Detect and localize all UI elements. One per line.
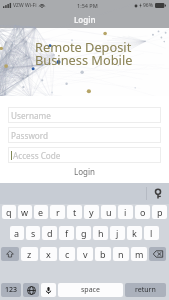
button[interactable]: j [110, 226, 125, 240]
button[interactable]: Login [0, 164, 169, 179]
staticText: Business Mobile [35, 51, 133, 68]
staticText: Username [11, 110, 51, 121]
staticText: m [135, 248, 144, 260]
staticText: n [118, 248, 124, 260]
button[interactable]: l [144, 226, 159, 240]
staticText: e [38, 206, 44, 218]
staticText: h [98, 227, 104, 239]
button[interactable]: return [125, 283, 166, 297]
staticText: p [157, 206, 163, 218]
button[interactable]: p [152, 205, 167, 219]
button[interactable]: b [95, 247, 111, 261]
button[interactable]: v [77, 247, 93, 261]
button[interactable]: g [76, 226, 91, 240]
staticText: g [81, 227, 87, 239]
staticText: x [46, 248, 51, 260]
button[interactable]: f [59, 226, 74, 240]
staticText: 96% [143, 2, 153, 9]
button[interactable]: Password [8, 127, 161, 143]
staticText: c [65, 248, 70, 260]
button[interactable]: m [131, 247, 147, 261]
staticText: space [81, 285, 100, 295]
button[interactable]: y [84, 205, 99, 219]
staticText: Access Code [13, 150, 61, 161]
button[interactable]: Passwords [152, 188, 163, 199]
button[interactable]: space [58, 283, 123, 297]
staticText: j [116, 227, 119, 239]
staticText: return [135, 285, 156, 295]
button[interactable]: Backspace [149, 247, 166, 261]
button[interactable]: q [2, 205, 16, 219]
button[interactable]: n [113, 247, 129, 261]
button[interactable]: 123 [1, 283, 21, 297]
button[interactable]: i [118, 205, 133, 219]
staticText: w [21, 206, 29, 218]
button[interactable]: c [59, 247, 75, 261]
button[interactable]: o [135, 205, 150, 219]
staticText: z [27, 248, 32, 260]
staticText: l [150, 227, 153, 239]
button[interactable]: u [101, 205, 116, 219]
button[interactable]: Username [8, 107, 161, 123]
button[interactable]: Shift [1, 247, 19, 261]
staticText: q [6, 206, 12, 218]
staticText: y [89, 206, 94, 218]
button[interactable]: Next keyboard [23, 283, 39, 297]
button[interactable]: s [26, 226, 40, 240]
staticText: r [56, 206, 60, 218]
button[interactable]: x [40, 247, 57, 261]
staticText: VZW Wi-Fi [13, 2, 37, 9]
button[interactable]: h [93, 226, 108, 240]
staticText: Remote Deposit [35, 38, 132, 55]
staticText: f [65, 227, 69, 239]
button[interactable]: z [21, 247, 38, 261]
staticText: b [100, 248, 106, 260]
button[interactable]: d [42, 226, 57, 240]
staticText: o [140, 206, 146, 218]
button[interactable]: r [50, 205, 65, 219]
button[interactable]: Dictate [41, 283, 56, 297]
staticText: 1:54 PM [77, 2, 98, 9]
button[interactable]: a [10, 226, 24, 240]
staticText: t [73, 206, 77, 218]
staticText: d [47, 227, 53, 239]
staticText: i [124, 206, 127, 218]
button[interactable]: Access Code [8, 147, 161, 163]
staticText: Login [74, 166, 95, 177]
button[interactable]: w [18, 205, 32, 219]
button[interactable]: k [127, 226, 142, 240]
staticText: Login [74, 14, 96, 25]
staticText: u [106, 206, 112, 218]
staticText: a [14, 227, 20, 239]
staticText: v [83, 248, 88, 260]
staticText: s [31, 227, 36, 239]
button[interactable]: e [34, 205, 48, 219]
staticText: Password [11, 130, 49, 141]
staticText: k [132, 227, 137, 239]
button[interactable]: t [67, 205, 82, 219]
staticText: 123 [5, 285, 18, 295]
